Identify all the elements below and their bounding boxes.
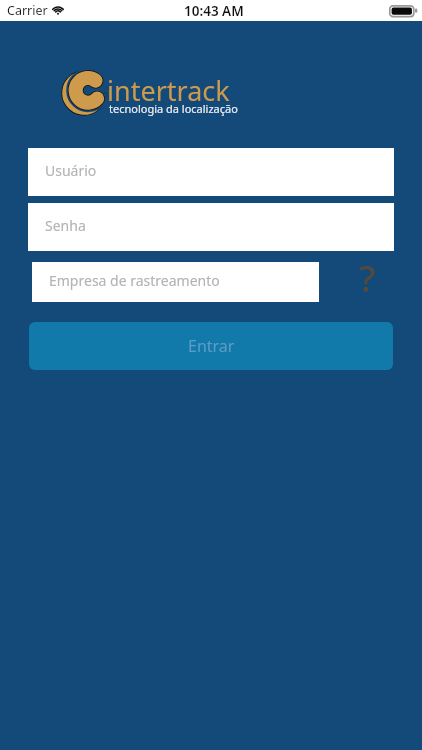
- button[interactable]: Empresa de rastreamento: [32, 262, 319, 302]
- staticText: Usuário: [45, 161, 97, 180]
- staticText: Senha: [45, 216, 86, 235]
- button[interactable]: Ajuda: [347, 252, 387, 292]
- button[interactable]: Entrar: [29, 322, 393, 370]
- staticText: Carrier: [7, 2, 48, 19]
- staticText: intertrack: [107, 72, 230, 109]
- button[interactable]: Senha: [28, 203, 394, 251]
- staticText: 10:43 AM: [184, 2, 244, 20]
- button[interactable]: Usuário: [28, 148, 394, 196]
- staticText: Empresa de rastreamento: [49, 271, 220, 290]
- staticText: ?: [359, 252, 376, 292]
- button[interactable]: intertrack: [60, 69, 108, 117]
- staticText: tecnologia da localização: [109, 101, 238, 116]
- staticText: Entrar: [188, 335, 235, 357]
